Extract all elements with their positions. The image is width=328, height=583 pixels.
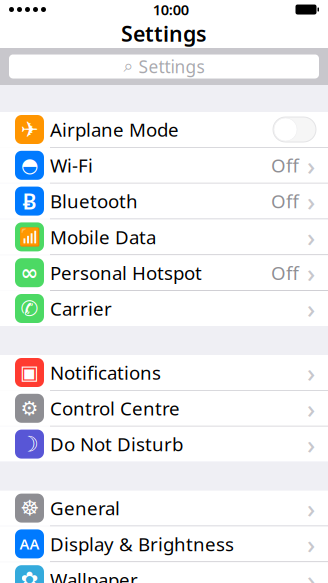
staticText: › [307,148,315,182]
staticText: ✿ [20,568,38,583]
staticText: Bluetooth [50,189,138,213]
button[interactable]: 📶 [0,219,328,254]
button[interactable]: ✿ [0,562,328,583]
staticText: Airplane Mode [50,117,179,142]
staticText: General [50,496,120,520]
button[interactable]: ▣ [0,355,328,390]
staticText: ⌕ [123,58,133,75]
staticText: ◓ [21,154,38,177]
staticText: Mobile Data [50,224,156,249]
staticText: Ƀ [22,187,36,215]
staticText: ∞ [20,261,38,285]
staticText: AA [19,534,39,554]
staticText: Settings [121,19,207,48]
staticText: Notifications [50,360,161,385]
staticText: Settings [138,55,204,78]
staticText: ▣ [20,361,39,384]
staticText: › [307,356,315,389]
staticText: ✈ [20,117,38,142]
staticText: Do Not Disturb [50,432,183,456]
staticText: ☽ [20,432,39,456]
staticText: › [307,427,315,461]
staticText: 📶 [18,227,40,247]
staticText: Wallpaper [50,567,138,583]
staticText: › [307,220,315,254]
button[interactable]: ☸ [0,491,328,526]
staticText: Off [271,260,299,285]
staticText: › [307,491,315,525]
staticText: Personal Hotspot [50,260,202,285]
button[interactable]: Ƀ [0,184,328,219]
staticText: ✆ [20,296,38,321]
button[interactable]: ⚙ [0,391,328,426]
staticText: Carrier [50,296,112,321]
staticText: ⚙ [20,397,38,420]
staticText: › [307,563,315,583]
staticText: › [307,292,315,325]
staticText: › [307,527,315,561]
button[interactable]: ✆ [0,291,328,326]
button[interactable]: ☽ [0,427,328,462]
staticText: Off [271,189,299,213]
staticText: › [307,184,315,218]
staticText: Off [271,153,299,178]
staticText: › [307,391,315,425]
button[interactable]: AA [0,526,328,561]
staticText: › [307,256,315,289]
staticText: ☸ [20,496,39,520]
staticText: Display & Brightness [50,531,234,556]
button[interactable]: ∞ [0,255,328,290]
button[interactable]: ✈ [0,112,328,147]
staticText: Wi-Fi [50,153,93,178]
button[interactable]: ◓ [0,148,328,183]
staticText: 10:00 [153,0,189,19]
staticText: Control Centre [50,396,180,421]
